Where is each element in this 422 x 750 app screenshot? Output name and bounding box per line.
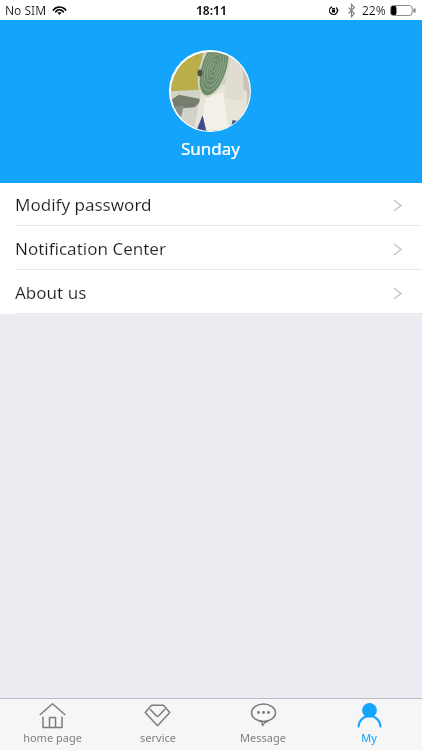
staticText: My — [361, 730, 377, 745]
button[interactable]: Profile photo — [169, 50, 251, 132]
button[interactable]: Message — [210, 699, 316, 750]
button[interactable]: Notification Center — [0, 226, 422, 270]
staticText: service — [140, 730, 176, 745]
staticText: Notification Center — [15, 237, 166, 260]
button[interactable]: home page — [0, 699, 105, 750]
button[interactable]: service — [105, 699, 210, 750]
staticText: No SIM — [5, 2, 47, 18]
staticText: home page — [23, 730, 82, 745]
staticText: Message — [240, 730, 286, 745]
staticText: Modify password — [15, 193, 152, 216]
button[interactable]: Modify password — [0, 183, 422, 226]
staticText: About us — [15, 281, 87, 304]
staticText: 18:11 — [196, 2, 227, 18]
staticText: 22% — [362, 2, 386, 18]
button[interactable]: About us — [0, 270, 422, 314]
staticText: Sunday — [181, 137, 241, 160]
button[interactable]: My — [316, 699, 422, 750]
